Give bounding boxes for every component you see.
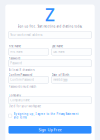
staticText: Last Name [53,50,65,53]
staticText: Password [8,57,20,60]
staticText: Used for your workspace [8,104,41,108]
staticText: Sign up free. Start meeting and chatting… [17,25,82,28]
staticText: Company name [10,98,30,102]
staticText: At least 8 characters [8,68,34,72]
staticText: Your work email address [10,33,42,37]
staticText: Passwords must match [8,85,36,88]
staticText: Z [45,3,55,26]
staticText: First Name [8,44,21,48]
staticText: mm/dd/yyyy [53,78,67,81]
staticText: By signing up, I agree to the Privacy St… [13,112,78,119]
staticText: Password [10,61,22,65]
button[interactable]: Sign Up Free [8,126,91,134]
staticText: Last Name [51,44,63,48]
staticText: Confirm Password [10,78,34,81]
staticText: Date of Birth [51,73,69,77]
staticText: Sign Up Free [38,127,61,132]
staticText: Company [8,94,20,97]
staticText: First Name [10,50,23,53]
staticText: Confirm Password [8,73,32,77]
